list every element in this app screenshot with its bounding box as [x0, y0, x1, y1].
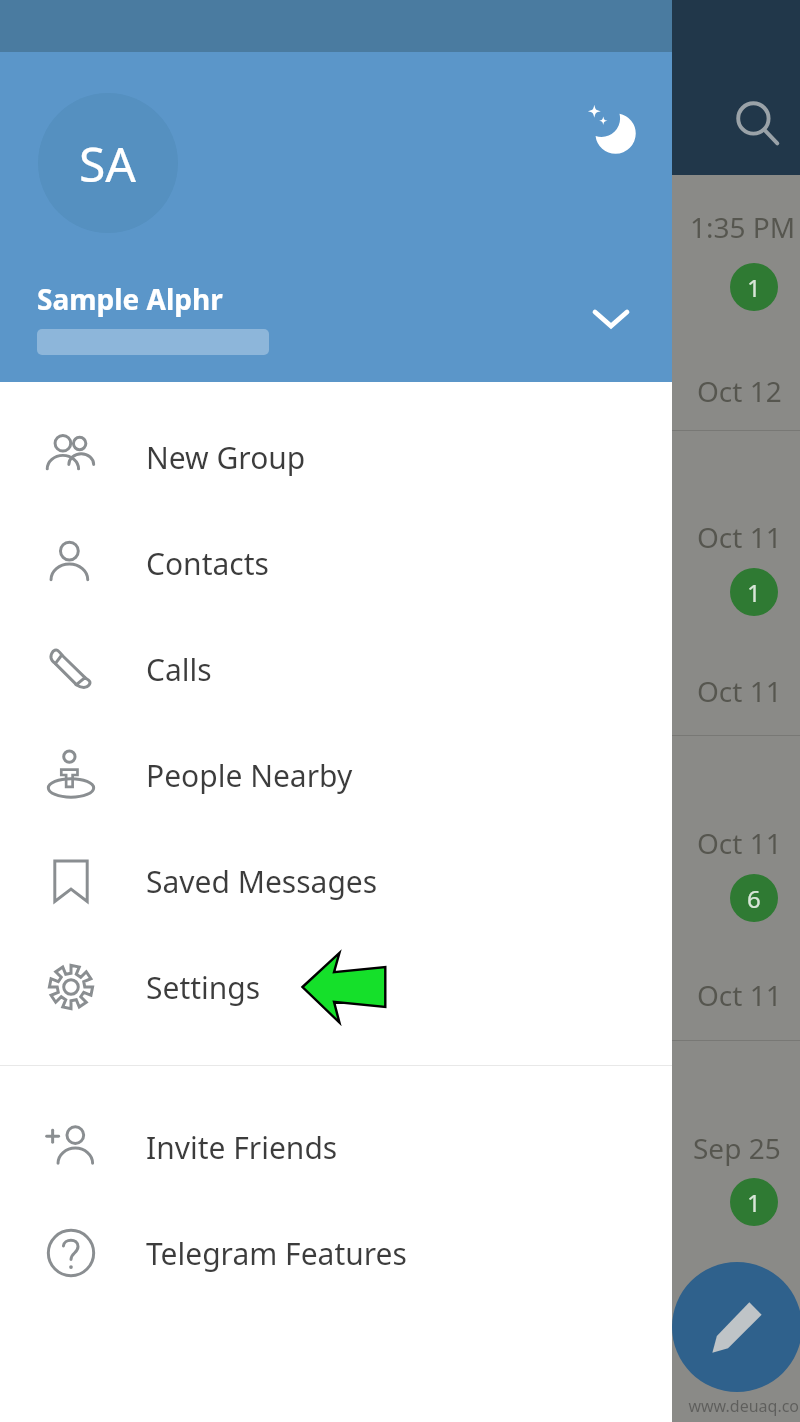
staticText: 1:35 PM	[690, 208, 796, 246]
button[interactable]: Invite Friends	[0, 1094, 672, 1200]
button[interactable]: Toggle night mode	[572, 90, 648, 166]
button[interactable]: Contacts	[0, 510, 672, 616]
staticText: Sample Alphr	[37, 280, 223, 318]
staticText: Sep 25	[693, 1129, 781, 1167]
button[interactable]: SA	[0, 52, 672, 382]
button[interactable]: Search	[722, 88, 794, 160]
staticText: Telegram Features	[146, 1233, 407, 1274]
staticText: Invite Friends	[146, 1127, 338, 1168]
staticText: Settings	[146, 967, 261, 1008]
button[interactable]: Saved Messages	[0, 828, 672, 934]
staticText: Oct 11	[697, 976, 782, 1014]
button[interactable]: New message	[672, 1262, 800, 1392]
staticText: Oct 11	[697, 672, 782, 710]
staticText: 6	[747, 882, 761, 915]
button[interactable]: New Group	[0, 404, 672, 510]
staticText: SA	[79, 131, 137, 196]
button[interactable]: People Nearby	[0, 722, 672, 828]
staticText: 1	[747, 576, 761, 609]
staticText: New Group	[146, 437, 306, 478]
staticText: Calls	[146, 649, 212, 690]
staticText: 1	[747, 1186, 761, 1219]
button[interactable]: Telegram Features	[0, 1200, 672, 1306]
staticText: Oct 11	[697, 518, 782, 556]
staticText: www.deuaq.com	[688, 1395, 800, 1417]
staticText: Saved Messages	[146, 861, 378, 902]
staticText: Contacts	[146, 543, 269, 584]
button[interactable]: Expand accounts	[573, 280, 649, 356]
staticText: 1	[747, 271, 761, 304]
staticText: Oct 11	[697, 824, 782, 862]
staticText: Oct 12	[697, 372, 782, 410]
staticText: People Nearby	[146, 755, 353, 796]
button[interactable]: Calls	[0, 616, 672, 722]
button[interactable]: Settings	[0, 934, 672, 1040]
